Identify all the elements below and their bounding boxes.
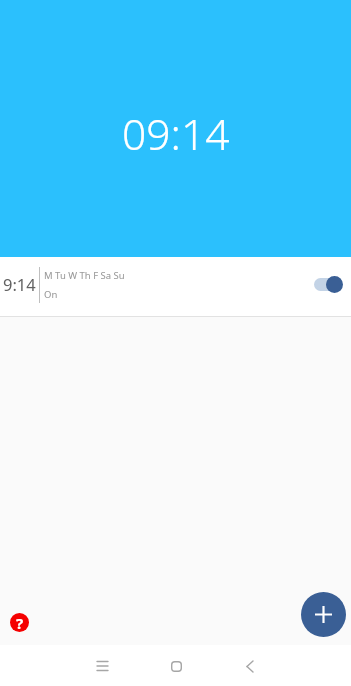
button[interactable]: Help xyxy=(10,613,29,632)
button[interactable]: Home xyxy=(156,646,196,686)
button[interactable]: Recents xyxy=(82,646,122,686)
button[interactable]: Back xyxy=(230,646,270,686)
button[interactable]: 9:14 xyxy=(0,257,351,316)
staticText: 9:14 xyxy=(3,273,36,295)
staticText: 09:14 xyxy=(122,105,230,163)
staticText: On xyxy=(44,288,58,301)
staticText: ? xyxy=(16,613,24,632)
staticText: M Tu W Th F Sa Su xyxy=(44,269,125,282)
button[interactable]: Add alarm xyxy=(301,592,346,637)
button[interactable]: Alarm on xyxy=(314,272,344,296)
